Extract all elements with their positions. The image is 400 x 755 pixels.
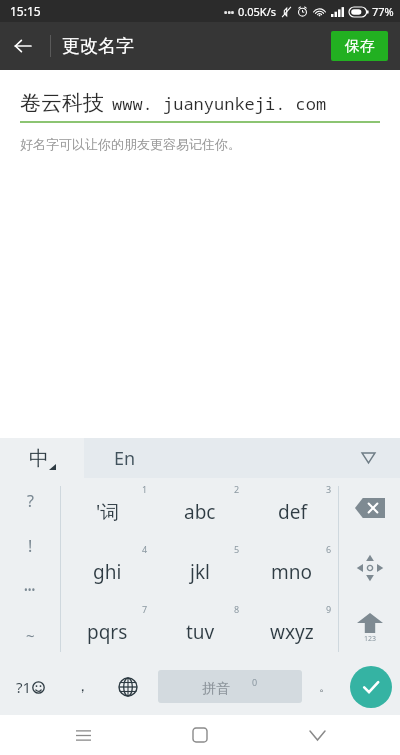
button[interactable]: Menu	[59, 715, 107, 755]
staticText: 6	[326, 543, 332, 555]
staticText: ，	[75, 677, 90, 696]
button[interactable]: ?1	[0, 658, 60, 715]
staticText: 0.05K/s	[238, 4, 276, 19]
staticText: 更改名字	[62, 35, 134, 58]
button[interactable]: 3	[246, 478, 338, 538]
staticText: 8	[234, 603, 240, 615]
button[interactable]: ?	[0, 479, 60, 523]
staticText: 0	[252, 676, 258, 688]
staticText: 卷云科技	[20, 90, 104, 116]
staticText: ghi	[93, 559, 122, 585]
staticText: pqrs	[87, 619, 128, 645]
staticText: www. juanyunkeji. com	[112, 92, 327, 115]
staticText: 3	[326, 483, 332, 495]
staticText: •••	[24, 583, 36, 597]
staticText: 9	[326, 603, 332, 615]
staticText: tuv	[186, 619, 215, 645]
button[interactable]: 7	[61, 598, 154, 658]
staticText: ?1	[16, 677, 32, 697]
button[interactable]: 1	[61, 478, 154, 538]
button[interactable]: En	[84, 438, 400, 478]
button[interactable]: Move cursor	[340, 538, 400, 598]
button[interactable]: •••	[0, 568, 60, 612]
staticText: 拼音	[202, 680, 230, 698]
staticText: 7	[142, 603, 148, 615]
button[interactable]: Home	[176, 715, 224, 755]
staticText: 中	[29, 446, 49, 471]
button[interactable]: Shift, numbers	[340, 598, 400, 658]
button[interactable]: 4	[61, 538, 154, 598]
staticText: 5	[234, 543, 240, 555]
staticText: •••	[224, 6, 235, 18]
button[interactable]: Expand candidates	[356, 446, 380, 470]
staticText: !	[28, 535, 33, 557]
staticText: 4	[142, 543, 148, 555]
button[interactable]: 5	[154, 538, 246, 598]
staticText: '词	[96, 499, 120, 525]
staticText: 123	[364, 634, 377, 644]
staticText: abc	[184, 499, 216, 525]
button[interactable]: 8	[154, 598, 246, 658]
staticText: 15:15	[10, 3, 41, 19]
button[interactable]: 中	[0, 438, 84, 478]
button[interactable]: 拼音	[158, 670, 302, 703]
staticText: 1	[142, 483, 148, 495]
staticText: wxyz	[270, 619, 314, 645]
button[interactable]: 9	[246, 598, 338, 658]
button[interactable]: 6	[246, 538, 338, 598]
staticText: def	[278, 499, 307, 525]
button[interactable]: !	[0, 524, 60, 568]
staticText: ?	[27, 490, 34, 512]
staticText: 2	[234, 483, 240, 495]
button[interactable]: 。	[308, 658, 342, 715]
button[interactable]: ~	[0, 613, 60, 657]
button[interactable]: Switch language	[104, 658, 152, 715]
button[interactable]: Hide keyboard	[293, 715, 341, 755]
staticText: 保存	[345, 37, 375, 56]
button[interactable]: 保存	[331, 31, 388, 61]
staticText: 77%	[372, 4, 394, 19]
button[interactable]: Back	[0, 23, 46, 69]
button[interactable]: Confirm	[342, 658, 400, 715]
staticText: jkl	[190, 559, 210, 585]
staticText: En	[114, 446, 136, 471]
button[interactable]: 2	[154, 478, 246, 538]
staticText: ~	[26, 625, 35, 645]
button[interactable]: Delete	[340, 478, 400, 538]
button[interactable]: ，	[60, 658, 104, 715]
staticText: 。	[319, 679, 331, 694]
staticText: 好名字可以让你的朋友更容易记住你。	[20, 136, 241, 152]
staticText: mno	[271, 559, 313, 585]
